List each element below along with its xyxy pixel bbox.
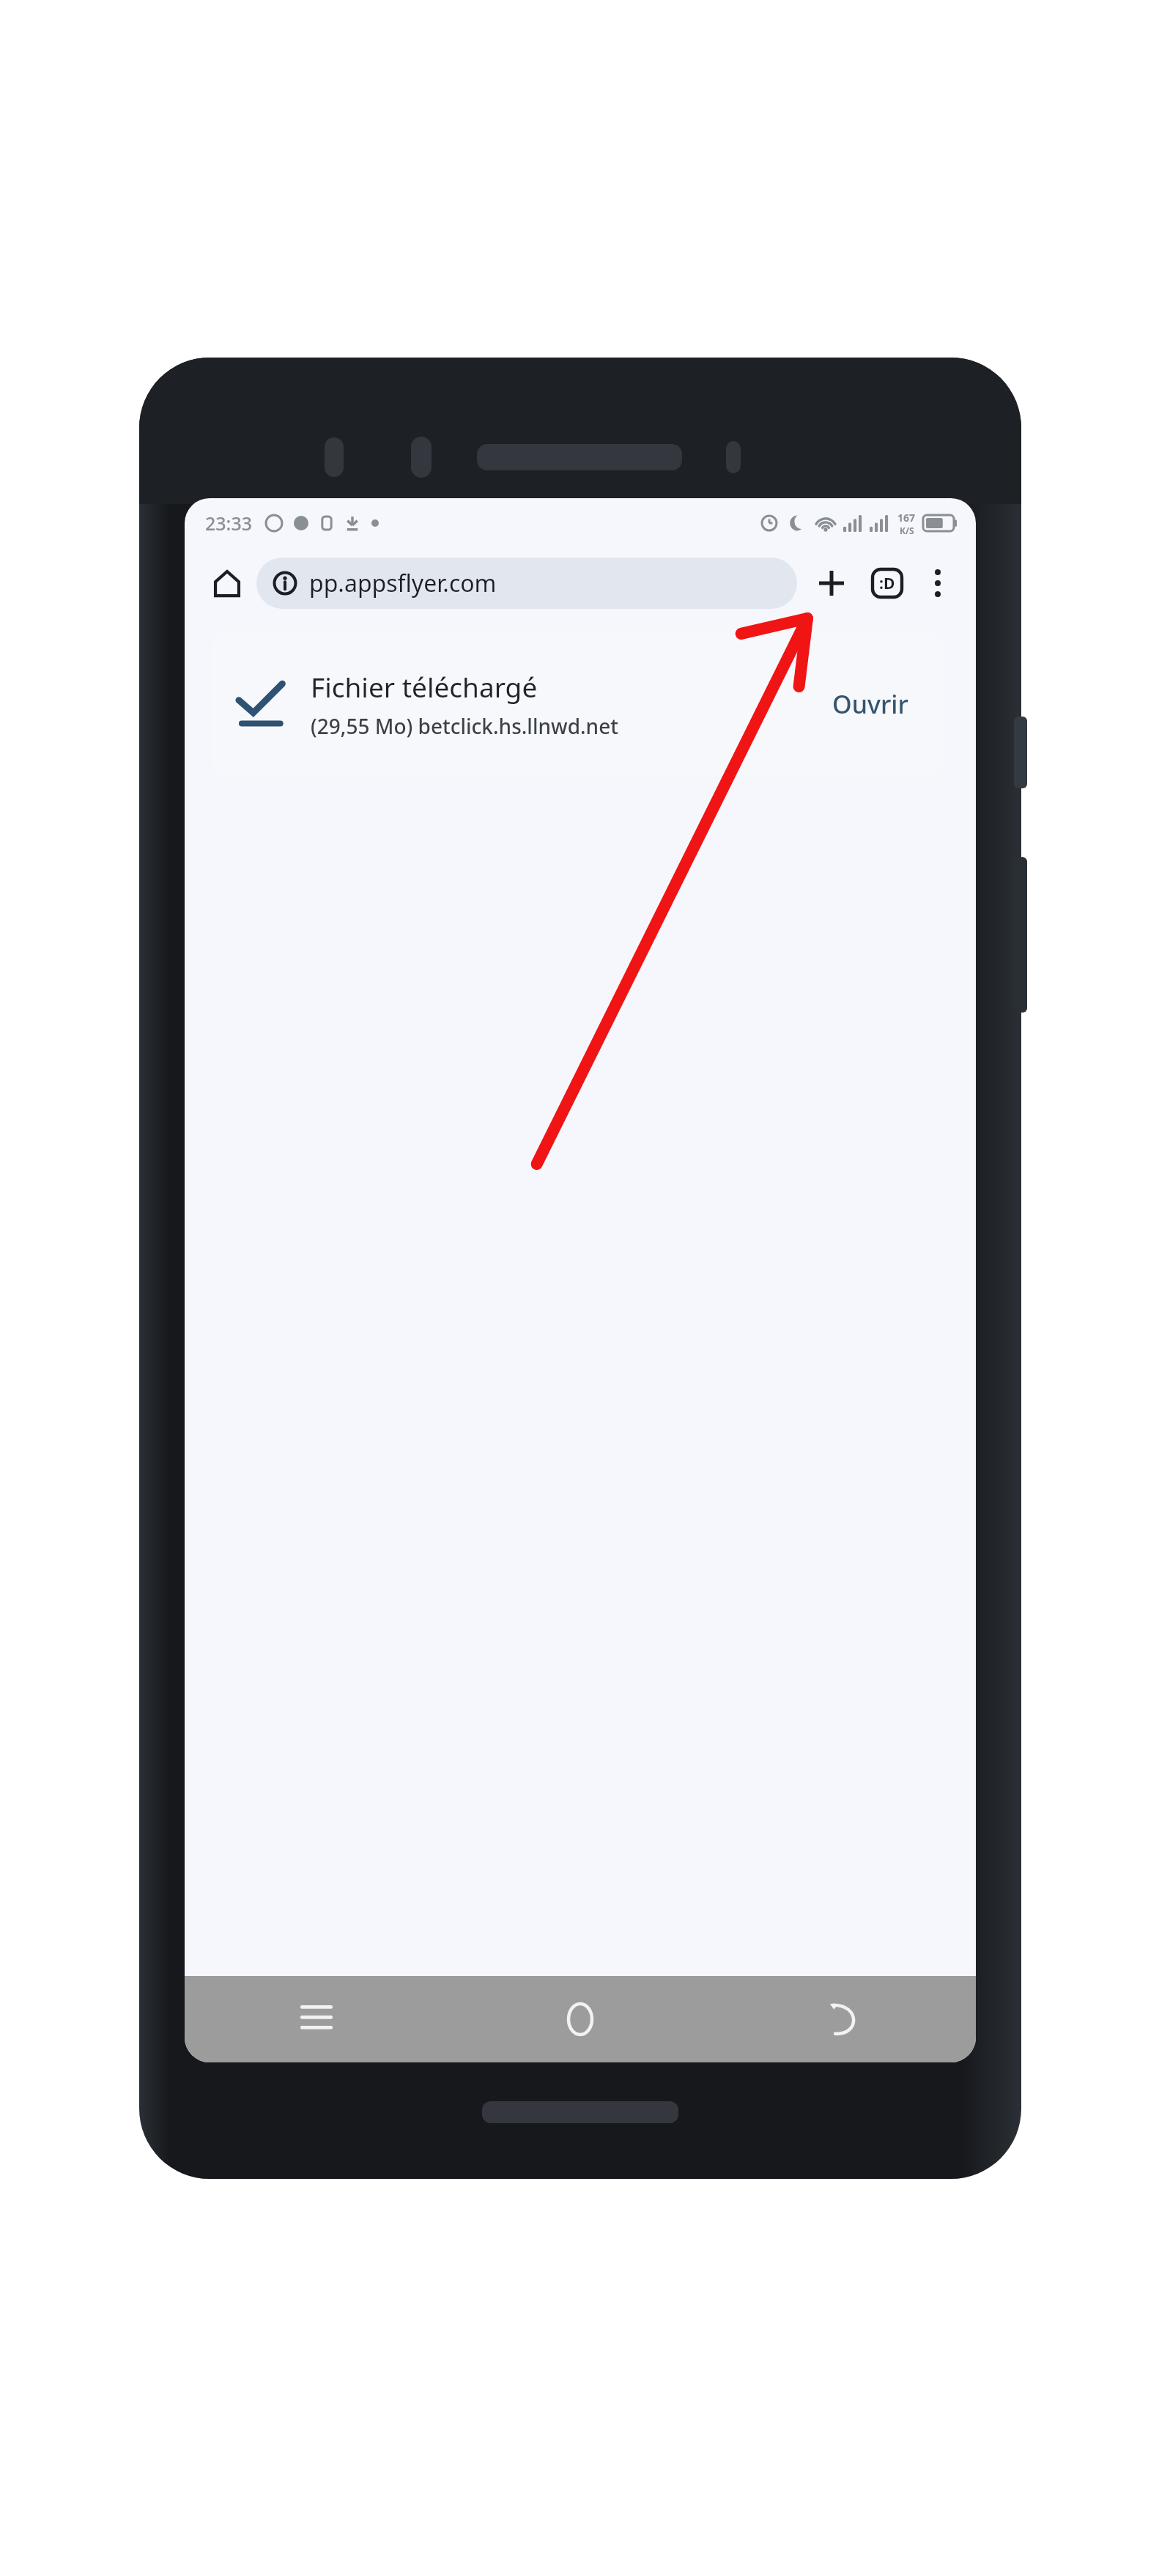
staticText: 23:33 bbox=[205, 511, 253, 536]
staticText: Ouvrir bbox=[832, 687, 908, 721]
button[interactable]: Fichier téléchargé bbox=[211, 632, 944, 777]
staticText: 167 bbox=[897, 511, 916, 525]
button[interactable]: Home bbox=[204, 560, 251, 607]
staticText: (29,55 Mo) betclick.hs.llnwd.net bbox=[311, 712, 618, 740]
button[interactable]: More options bbox=[916, 561, 960, 605]
staticText: pp.appsflyer.com bbox=[309, 567, 497, 599]
button[interactable]: Back bbox=[712, 1976, 976, 2062]
button[interactable]: Switch tabs bbox=[863, 559, 911, 607]
staticText: :D bbox=[879, 573, 895, 594]
button[interactable]: pp.appsflyer.com bbox=[256, 558, 797, 609]
staticText: Fichier téléchargé bbox=[311, 668, 538, 705]
button[interactable]: Ouvrir bbox=[822, 678, 919, 730]
button[interactable]: Home bbox=[448, 1976, 712, 2062]
staticText: K/S bbox=[900, 525, 914, 536]
button[interactable]: New tab bbox=[807, 559, 856, 607]
button[interactable]: Recent apps bbox=[185, 1976, 448, 2062]
